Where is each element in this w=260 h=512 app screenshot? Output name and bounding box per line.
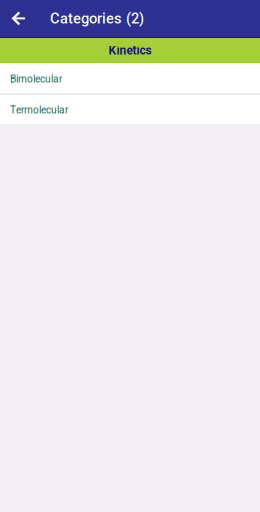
staticText: Bimolecular	[10, 73, 62, 85]
button[interactable]: Bimolecular	[0, 63, 260, 93]
button[interactable]: Termolecular	[0, 95, 260, 124]
staticText: Termolecular	[10, 104, 68, 116]
staticText: Kinetics	[108, 43, 151, 58]
button[interactable]: Back	[0, 0, 37, 36]
staticText: Categories (2)	[50, 10, 144, 27]
